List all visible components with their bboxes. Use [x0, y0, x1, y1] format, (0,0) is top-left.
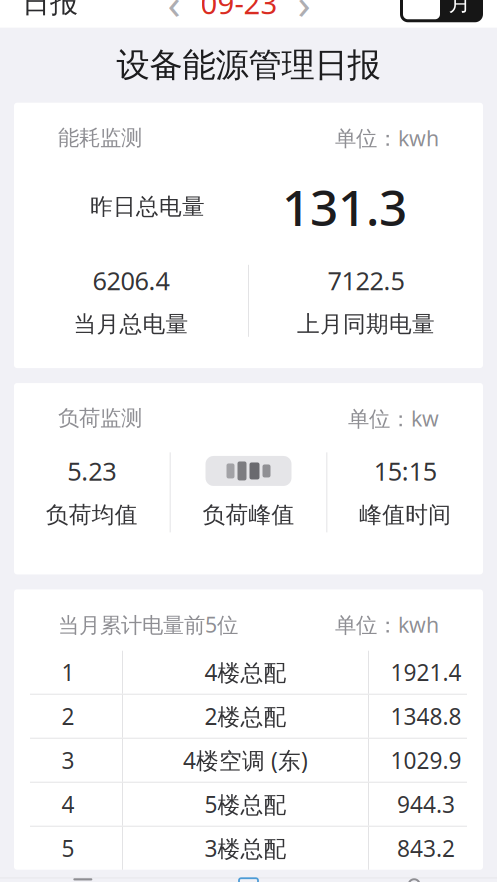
staticText: 月 [448, 0, 471, 17]
staticText: 4 [61, 789, 74, 819]
staticText: 4楼空调 (东) [183, 745, 308, 775]
staticText: 当月累计电量前5位 [58, 610, 238, 639]
staticText: 1 [61, 657, 74, 687]
staticText: 131.3 [282, 174, 407, 240]
staticText: › [297, 0, 310, 31]
staticText: 昨日总电量 [90, 193, 205, 221]
staticText: 944.3 [397, 789, 455, 819]
staticText: 能耗监测 [58, 125, 142, 151]
staticText: 负荷监测 [58, 405, 142, 431]
staticText: 2 [61, 701, 74, 731]
button[interactable]: 我的 [331, 878, 497, 882]
staticText: 5.23 [67, 454, 116, 488]
staticText: 日报 [22, 0, 78, 20]
staticText: 当月总电量 [73, 310, 188, 338]
staticText: 3楼总配 [204, 833, 286, 863]
staticText: ‹ [167, 0, 180, 31]
staticText: 上月同期电量 [297, 310, 435, 338]
staticText: 5楼总配 [204, 789, 286, 819]
staticText: 峰值时间 [359, 501, 451, 529]
staticText: 6206.4 [92, 264, 169, 297]
staticText: 单位：kw [348, 404, 439, 432]
staticText: 负荷峰值 [202, 501, 294, 529]
staticText: 负荷均值 [46, 501, 138, 529]
staticText: 设备能源管理日报 [116, 45, 380, 86]
staticText: 7122.5 [327, 264, 404, 297]
staticText: 1348.8 [390, 701, 461, 731]
staticText: 4楼总配 [204, 657, 286, 687]
staticText: 1029.9 [390, 745, 461, 775]
staticText: 单位：kwh [335, 124, 439, 152]
staticText: 2楼总配 [204, 701, 286, 731]
staticText: 3 [61, 745, 74, 775]
button[interactable]: 日报 [166, 878, 331, 882]
button[interactable]: 首页 [0, 878, 166, 882]
staticText: 09-23 [200, 0, 277, 22]
button[interactable]: 上一天 [152, 0, 196, 25]
staticText: 15:15 [374, 454, 437, 488]
staticText: 单位：kwh [335, 610, 439, 639]
button[interactable]: 下一天 [282, 0, 326, 25]
staticText: 1921.4 [390, 657, 461, 687]
staticText: 5 [61, 833, 74, 863]
button[interactable]: 月 [400, 0, 483, 22]
staticText: 843.2 [397, 833, 455, 863]
